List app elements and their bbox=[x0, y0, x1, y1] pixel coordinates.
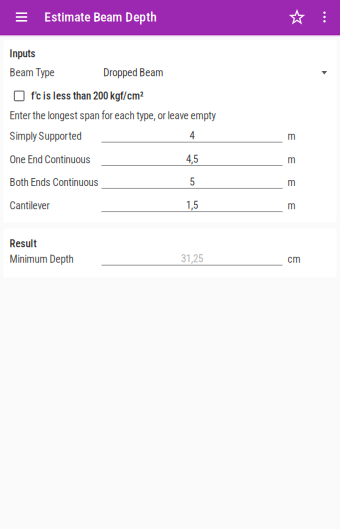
staticText: Cantilever bbox=[9, 199, 49, 212]
button[interactable]: 1,5 bbox=[101, 199, 282, 212]
button[interactable]: More options bbox=[312, 0, 337, 34]
staticText: m bbox=[287, 153, 295, 166]
staticText: 31,25 bbox=[181, 252, 203, 265]
staticText: Dropped Beam bbox=[103, 66, 163, 79]
staticText: 5 bbox=[189, 176, 194, 188]
button[interactable]: 31,25 bbox=[101, 253, 282, 266]
staticText: Result bbox=[9, 237, 36, 250]
staticText: One End Continuous bbox=[9, 153, 90, 166]
staticText: f'c is less than 200 kgf/cm² bbox=[31, 90, 144, 102]
staticText: Inputs bbox=[9, 47, 35, 60]
button[interactable]: 4 bbox=[101, 130, 282, 143]
button[interactable]: 5 bbox=[101, 176, 282, 189]
staticText: Both Ends Continuous bbox=[9, 176, 98, 189]
button[interactable]: f'c is less than 200 kgf/cm² bbox=[14, 90, 144, 102]
staticText: 4,5 bbox=[186, 153, 198, 165]
staticText: m bbox=[287, 199, 295, 212]
staticText: cm bbox=[287, 253, 300, 265]
staticText: 1,5 bbox=[186, 199, 198, 211]
staticText: m bbox=[287, 130, 295, 142]
staticText: Estimate Beam Depth bbox=[44, 9, 157, 25]
button[interactable]: Beam Type bbox=[9, 66, 330, 78]
staticText: Minimum Depth bbox=[9, 253, 73, 265]
staticText: m bbox=[287, 176, 295, 189]
button[interactable]: Add to favorites bbox=[282, 0, 312, 34]
button[interactable]: 4,5 bbox=[101, 153, 282, 166]
staticText: Enter the longest span for each type, or… bbox=[9, 109, 215, 122]
button[interactable]: Navigation menu bbox=[5, 0, 38, 34]
staticText: Beam Type bbox=[9, 66, 54, 79]
staticText: 4 bbox=[189, 129, 194, 142]
staticText: Simply Supported bbox=[9, 130, 81, 142]
